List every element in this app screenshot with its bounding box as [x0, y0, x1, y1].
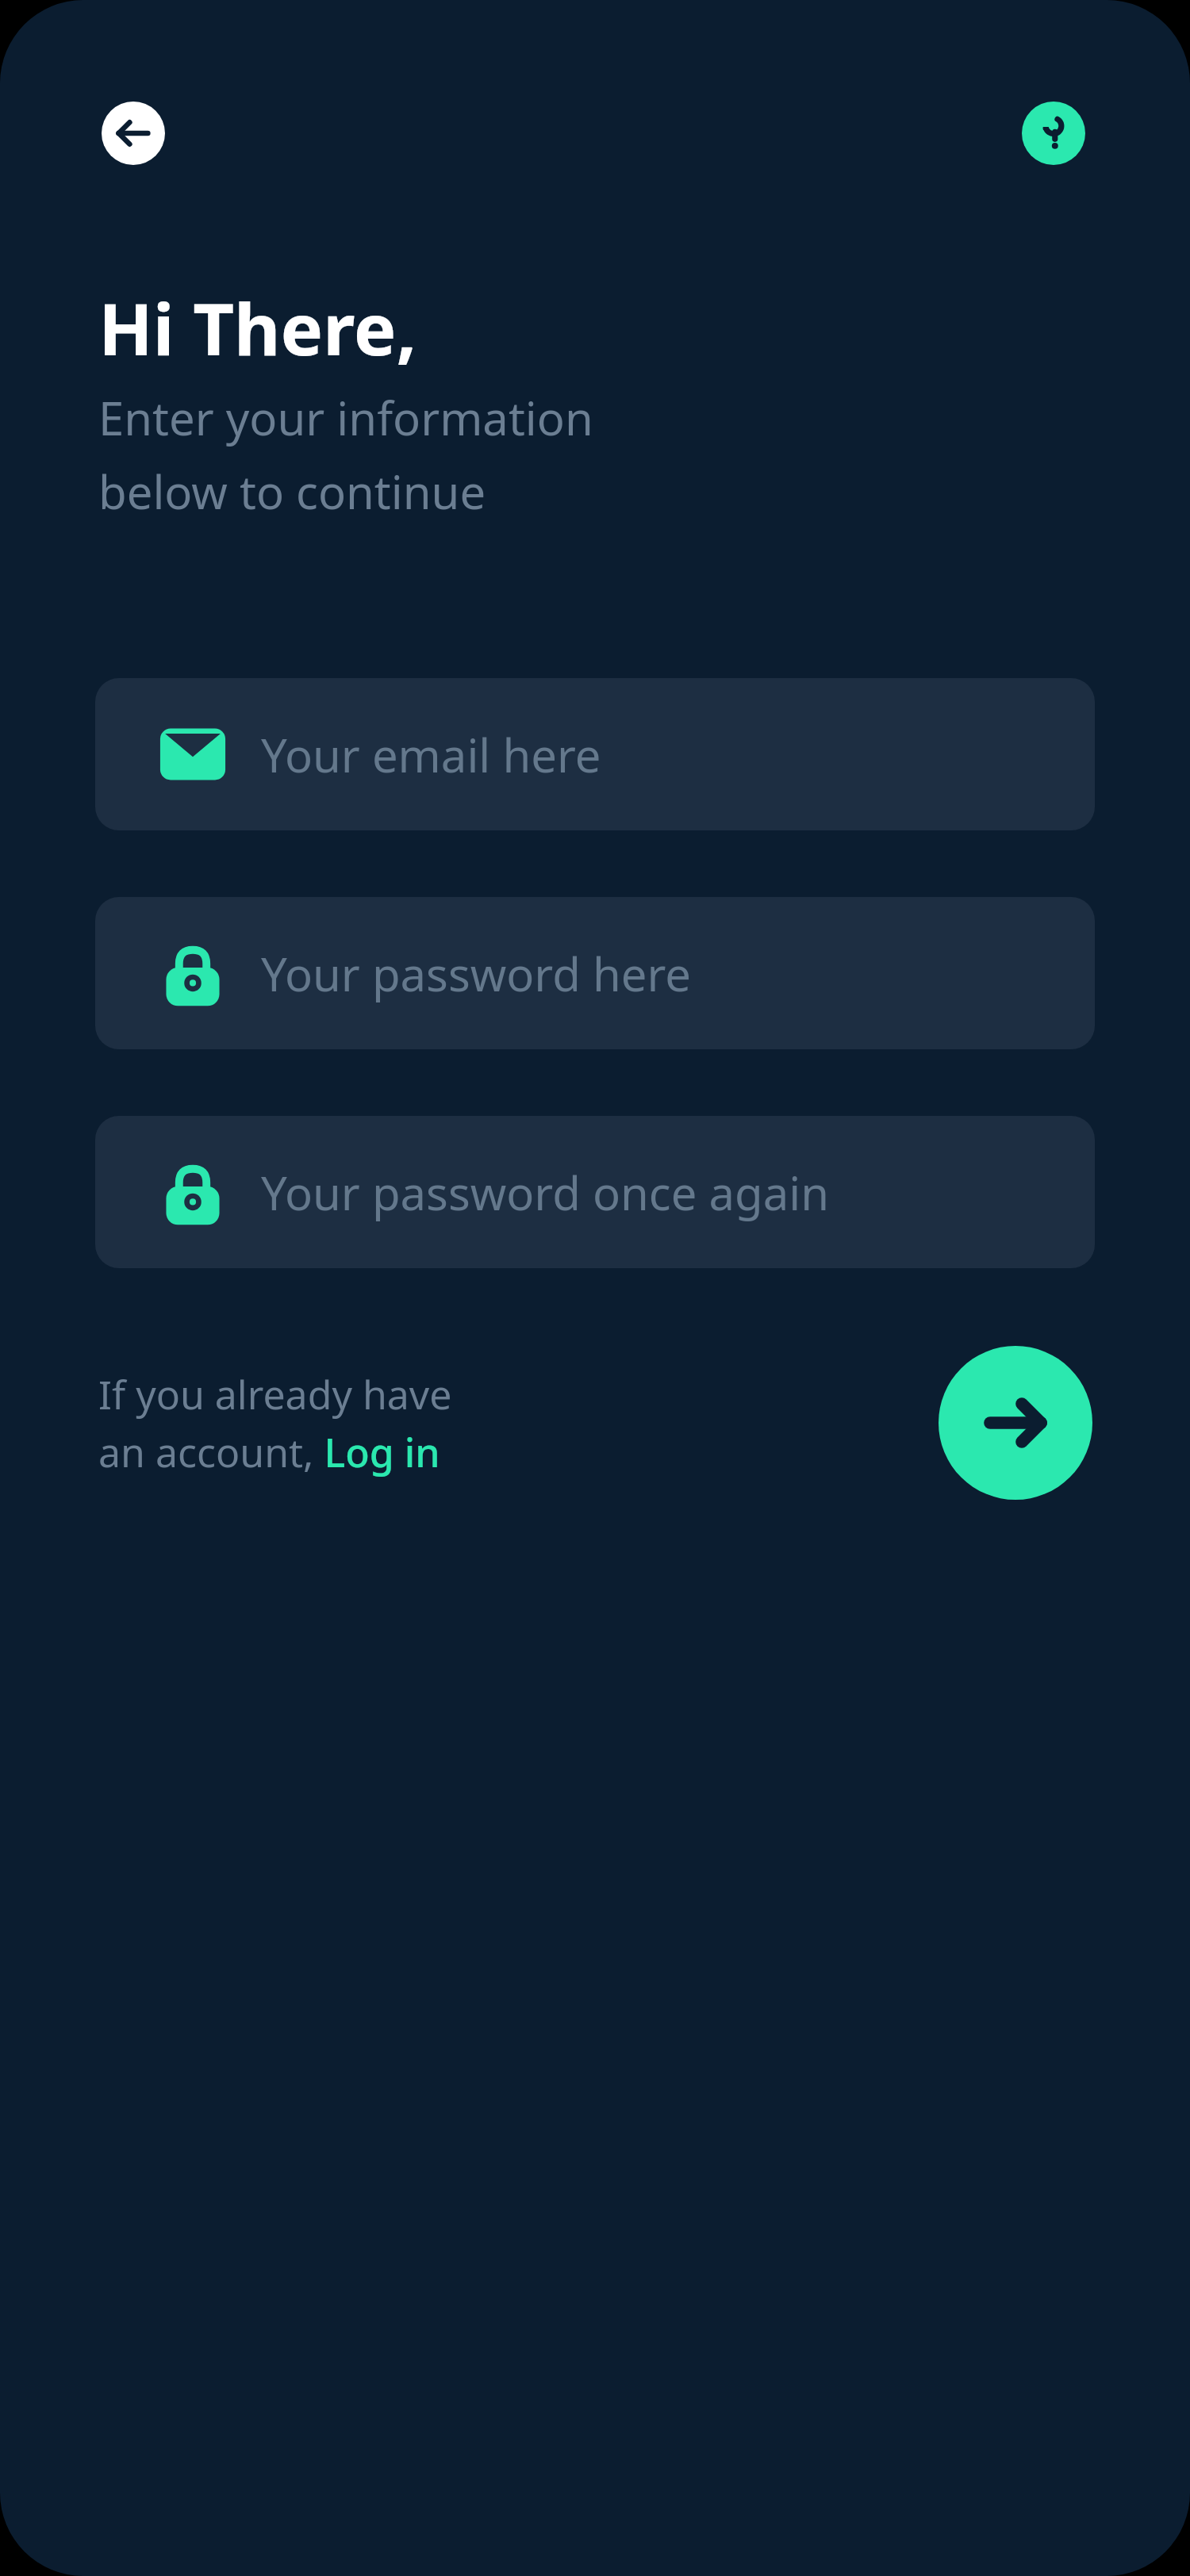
staticText: Hi There,: [98, 279, 417, 377]
button[interactable]: Your password here: [95, 897, 1095, 1049]
button[interactable]: Back: [102, 102, 165, 165]
staticText: Your email here: [261, 723, 601, 786]
button[interactable]: Help: [1022, 102, 1085, 165]
staticText: Your password here: [261, 942, 691, 1005]
staticText: If you already have an account, Log in: [98, 1367, 452, 1478]
staticText: Enter your information below to continue: [98, 386, 593, 523]
button[interactable]: Your email here: [95, 678, 1095, 830]
staticText: Your password once again: [261, 1161, 830, 1224]
button[interactable]: If you already have an account, Log in: [98, 1367, 452, 1478]
button[interactable]: Your password once again: [95, 1116, 1095, 1268]
button[interactable]: Continue: [939, 1346, 1092, 1500]
